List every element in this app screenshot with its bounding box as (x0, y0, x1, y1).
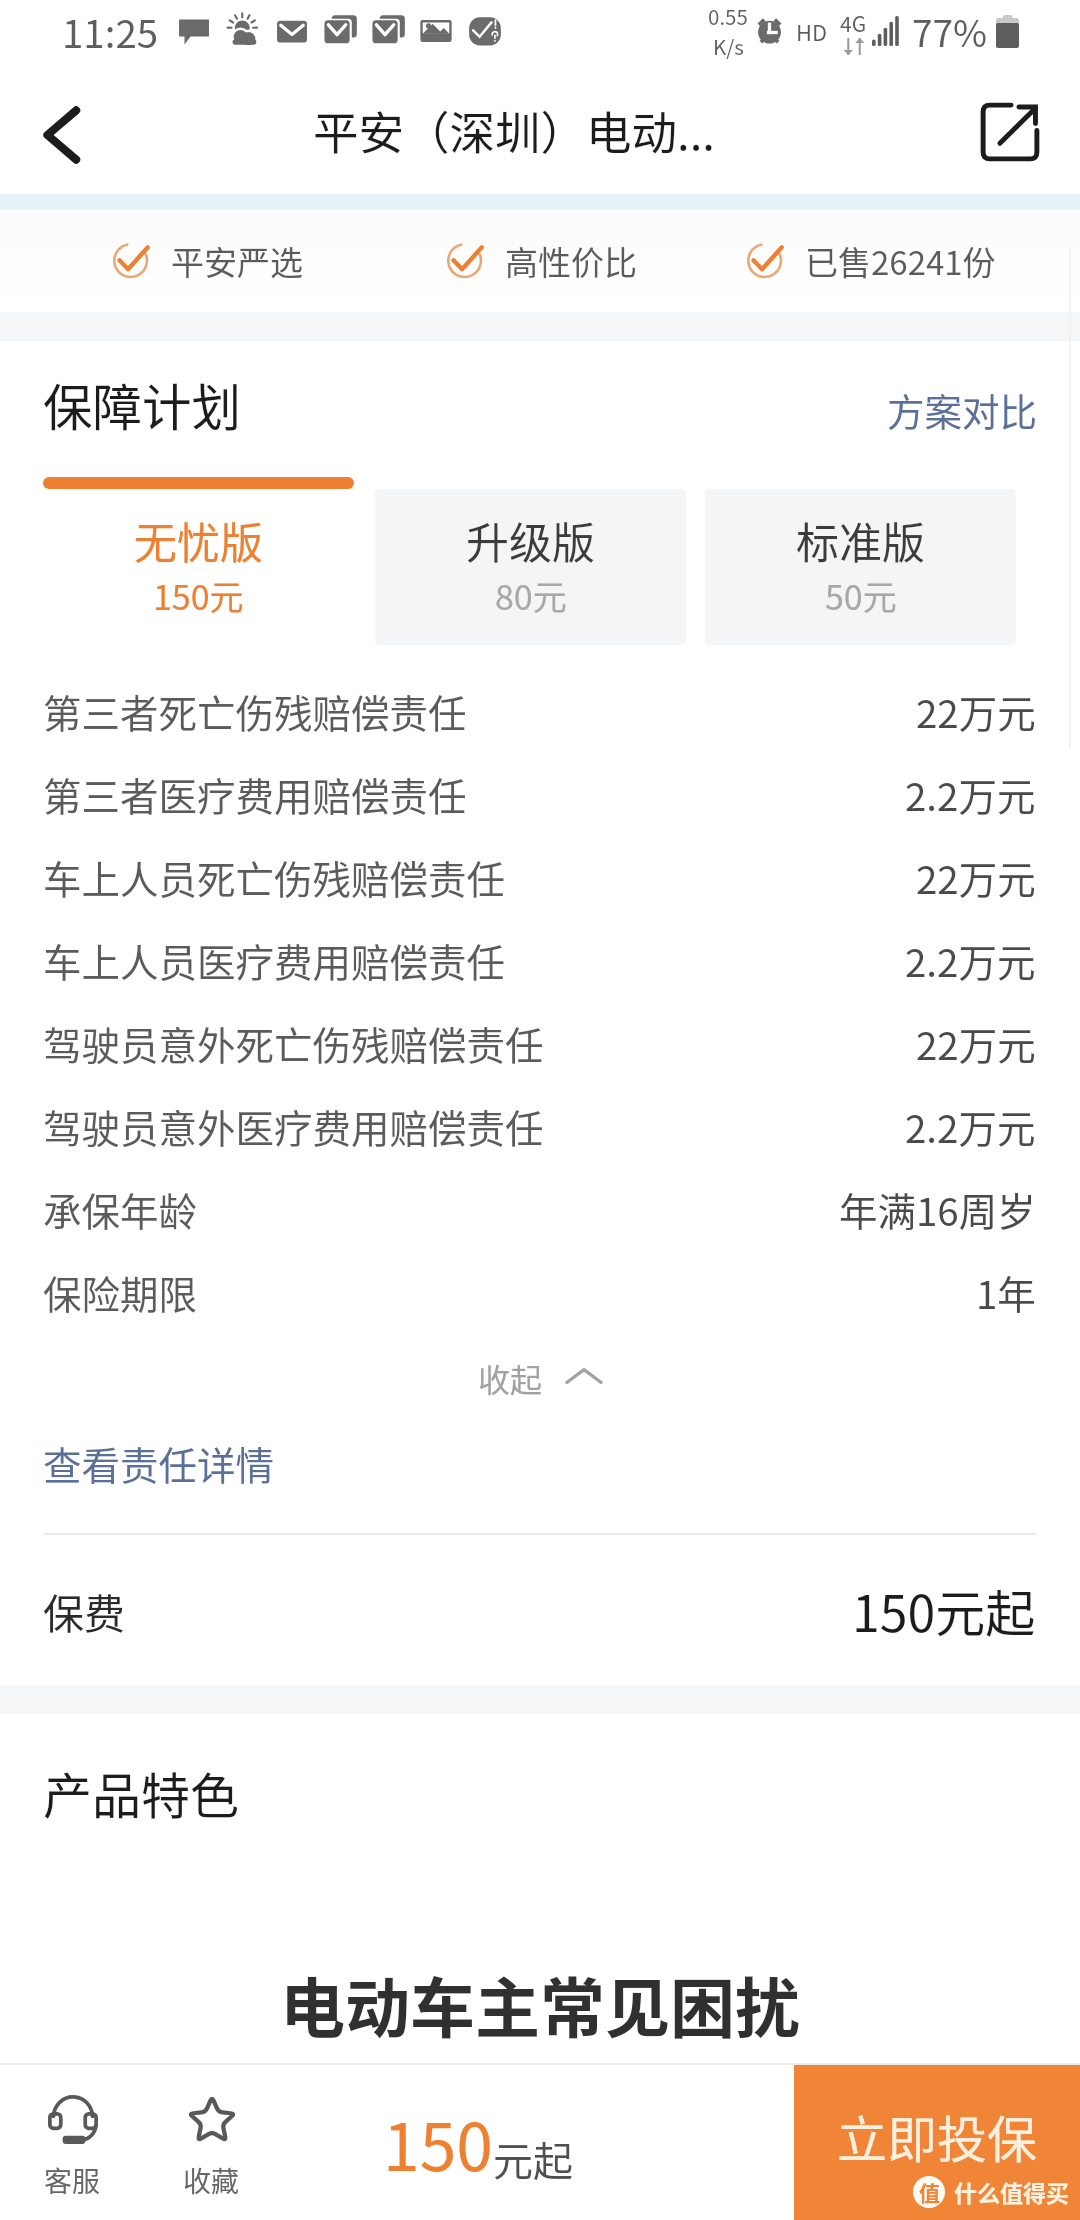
staticText: 22万元 (916, 849, 1036, 905)
staticText: 150元 (153, 571, 244, 620)
staticText: 值 (919, 2177, 940, 2207)
staticText: 年满16周岁 (839, 1181, 1036, 1237)
staticText: 元起 (493, 2130, 573, 2188)
staticText: 方案对比 (887, 382, 1037, 436)
staticText: 22万元 (916, 683, 1036, 739)
staticText: 第三者医疗费用赔偿责任 (43, 766, 467, 822)
staticText: 产品特色 (43, 1757, 240, 1828)
staticText: 150元起 (852, 1574, 1036, 1646)
staticText: 平安严选 (171, 237, 303, 285)
staticText: 4G (840, 8, 867, 38)
staticText: 升级版 (466, 509, 595, 571)
staticText: 22万元 (916, 1015, 1036, 1071)
button[interactable]: 方案对比 (865, 366, 1080, 452)
staticText: 查看责任详情 (43, 1435, 275, 1491)
staticText: 77% (912, 4, 988, 58)
staticText: 客服 (44, 2160, 101, 2201)
staticText: 保费 (43, 1581, 125, 1640)
staticText: K/s (713, 31, 744, 61)
staticText: 高性价比 (505, 237, 637, 285)
button[interactable]: 客服 (0, 2065, 145, 2220)
staticText: 80元 (495, 571, 567, 620)
staticText: 驾驶员意外医疗费用赔偿责任 (43, 1098, 544, 1154)
staticText: 收起 (478, 1355, 543, 1401)
button[interactable]: 收起 (0, 1333, 1080, 1423)
button[interactable]: 无忧版 (43, 477, 354, 645)
button[interactable]: 升级版 (375, 477, 686, 645)
staticText: 已售26241份 (805, 237, 996, 285)
staticText: 无忧版 (134, 509, 263, 571)
button[interactable]: 立即投保 (794, 2065, 1080, 2220)
staticText: 2.2万元 (905, 1098, 1036, 1154)
staticText: 50元 (825, 571, 897, 620)
staticText: 电动车主常见困扰 (280, 1957, 801, 2051)
staticText: 第三者死亡伤残赔偿责任 (43, 683, 467, 739)
button[interactable]: 标准版 (705, 477, 1016, 645)
staticText: 0.55 (708, 1, 748, 31)
button[interactable]: 收藏 (145, 2065, 278, 2220)
button[interactable]: Share (961, 83, 1059, 181)
staticText: HD (796, 15, 828, 47)
button[interactable]: 查看责任详情 (0, 1423, 1080, 1503)
staticText: 驾驶员意外死亡伤残赔偿责任 (43, 1015, 544, 1071)
button[interactable]: Back (14, 86, 112, 184)
staticText: 2.2万元 (905, 766, 1036, 822)
staticText: 车上人员死亡伤残赔偿责任 (43, 849, 506, 905)
staticText: 2.2万元 (905, 932, 1036, 988)
staticText: 车上人员医疗费用赔偿责任 (43, 932, 506, 988)
staticText: 150 (383, 2094, 493, 2190)
staticText: 1年 (976, 1264, 1036, 1320)
staticText: 标准版 (796, 509, 925, 571)
staticText: 保险期限 (43, 1264, 198, 1320)
staticText: 承保年龄 (43, 1181, 198, 1237)
staticText: 收藏 (183, 2160, 240, 2201)
staticText: 什么值得买 (954, 2175, 1069, 2208)
staticText: 立即投保 (837, 2100, 1037, 2172)
staticText: 11:25 (62, 3, 159, 59)
staticText: 保障计划 (43, 369, 241, 441)
staticText: 平安（深圳）电动... (313, 97, 715, 163)
